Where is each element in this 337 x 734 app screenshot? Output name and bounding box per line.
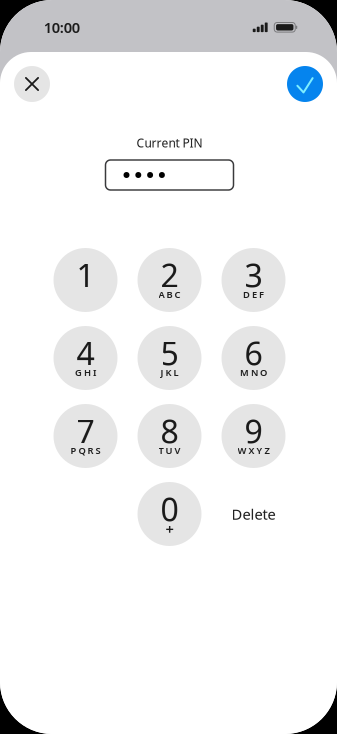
button[interactable]: Delete [213,482,293,546]
staticText: 6 [244,332,262,374]
staticText: Delete [231,504,275,524]
staticText: 10:00 [44,17,80,37]
staticText: 2 [160,254,178,296]
staticText: WXYZ [237,444,269,457]
staticText: JKL [160,366,178,379]
staticText: 0 [160,488,178,530]
button[interactable]: 5 [137,326,201,390]
button[interactable]: 9 [221,404,285,468]
staticText: 1 [76,254,94,296]
button[interactable]: 8 [137,404,201,468]
staticText: 9 [244,410,262,452]
button[interactable]: Close [14,66,50,102]
button[interactable]: 7 [53,404,117,468]
staticText: + [165,519,173,539]
button[interactable]: 1 [53,248,117,312]
button[interactable]: 2 [137,248,201,312]
staticText: 3 [244,254,262,296]
staticText: 7 [76,410,94,452]
staticText: PQRS [70,444,100,457]
staticText: TUV [158,444,180,457]
button[interactable]: 0 [137,482,201,546]
button[interactable]: Save [287,66,323,102]
staticText: DEF [243,288,264,301]
staticText: MNO [240,366,267,379]
button[interactable]: 6 [221,326,285,390]
staticText: GHI [75,366,96,379]
staticText: 8 [160,410,178,452]
staticText: Current PIN [136,135,202,151]
staticText: 5 [160,332,178,374]
staticText: ABC [158,288,180,301]
button[interactable]: 3 [221,248,285,312]
staticText: 4 [76,332,94,374]
button[interactable]: 4 [53,326,117,390]
